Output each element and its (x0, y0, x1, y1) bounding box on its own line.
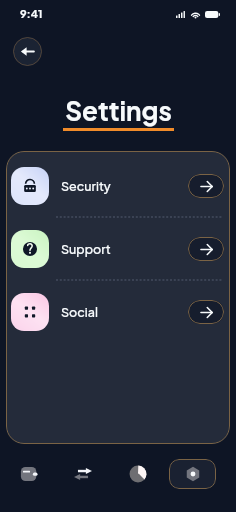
staticText: Settings (65, 94, 172, 127)
button[interactable]: Transfer (59, 459, 106, 489)
staticText: Support (61, 241, 111, 257)
staticText: Security (61, 178, 111, 194)
button[interactable]: Settings (169, 459, 216, 489)
staticText: Social (61, 304, 98, 320)
button[interactable]: Social (6, 281, 230, 343)
staticText: 9:41 (20, 7, 43, 21)
button[interactable]: Open Support (188, 237, 224, 261)
button[interactable]: Open Security (188, 174, 224, 198)
button[interactable]: Security (6, 155, 230, 217)
button[interactable]: Analytics (114, 459, 161, 489)
button[interactable]: Open Social (188, 300, 224, 324)
button[interactable]: Cards (4, 459, 51, 489)
button[interactable]: Back (13, 37, 42, 66)
button[interactable]: Support (6, 218, 230, 280)
